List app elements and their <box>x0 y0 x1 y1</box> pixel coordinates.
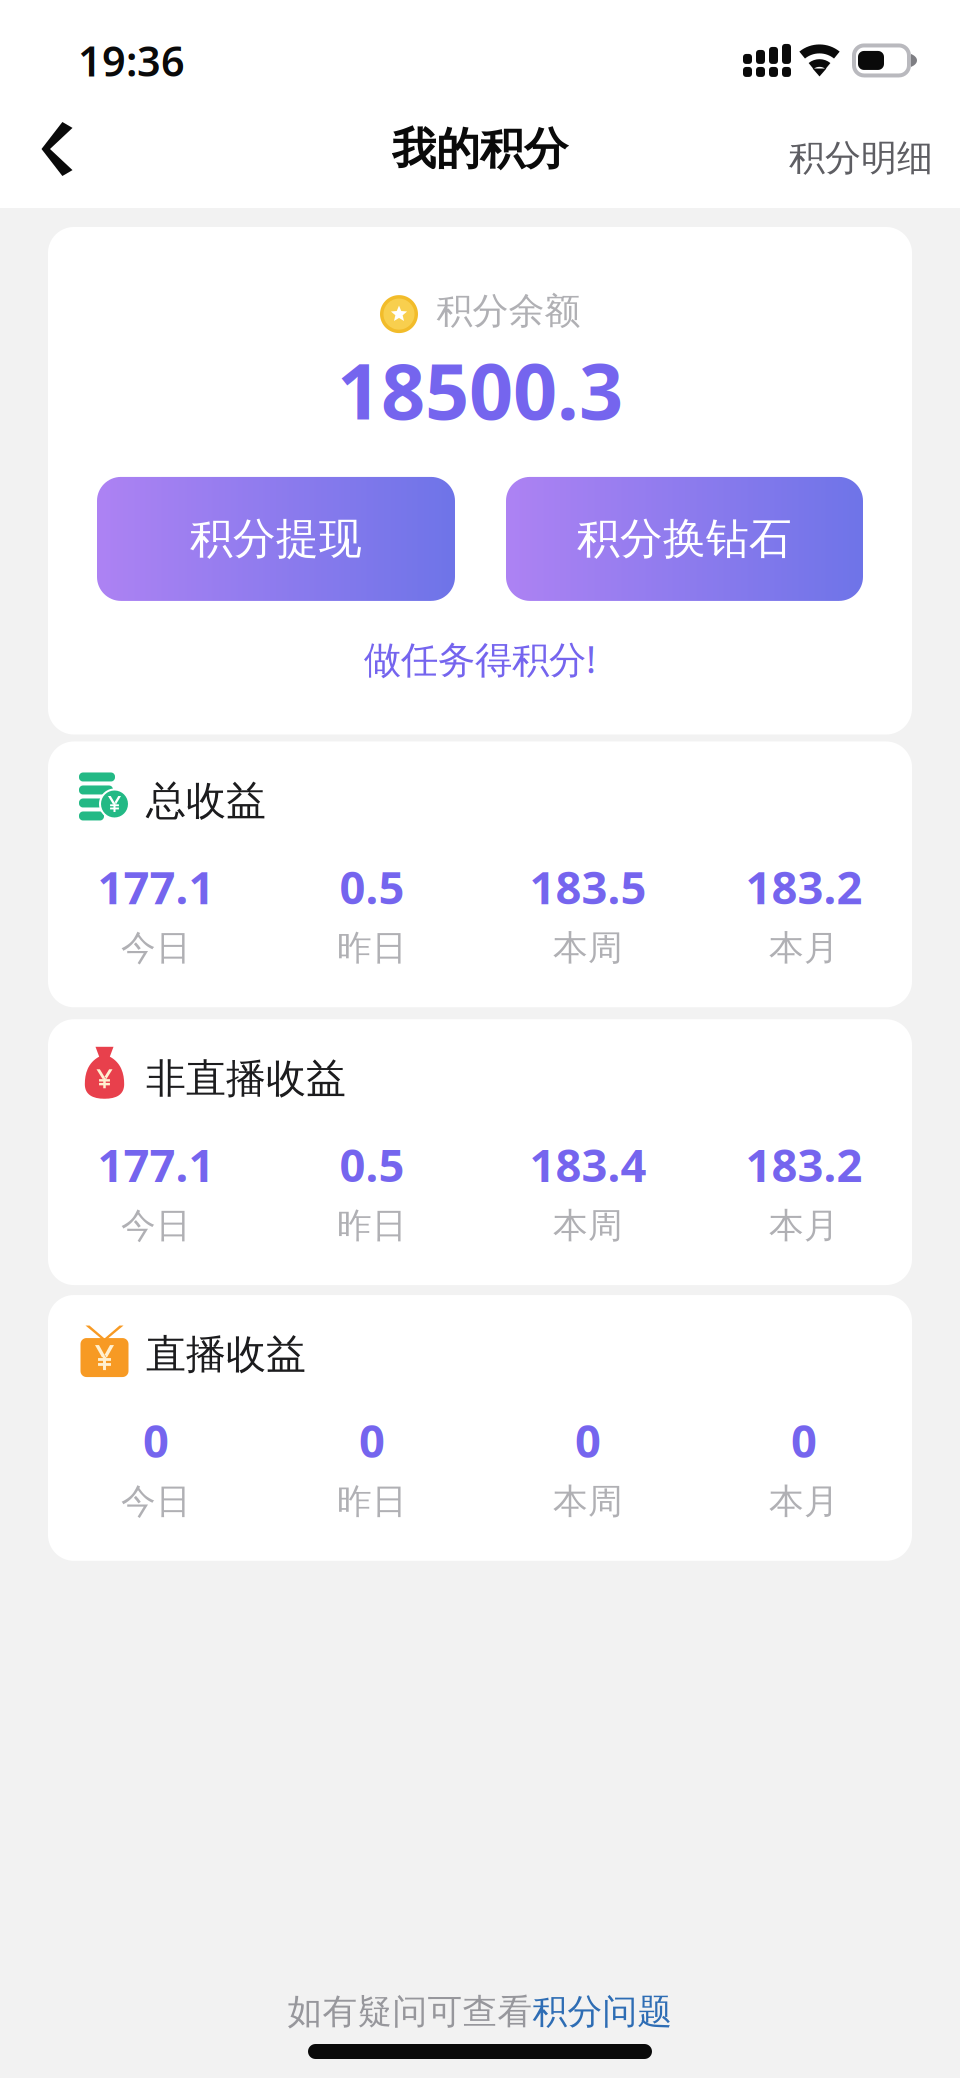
staticText: 总收益 <box>146 776 266 825</box>
staticText: 183.4 <box>529 1134 646 1194</box>
staticText: 0 <box>791 1410 817 1470</box>
staticText: 0 <box>575 1410 601 1470</box>
staticText: 本月 <box>769 1480 839 1523</box>
staticText: 积分余额 <box>436 289 580 333</box>
staticText: 今日 <box>121 1204 191 1247</box>
staticText: 我的积分 <box>392 122 568 176</box>
staticText: 19:36 <box>78 33 185 88</box>
staticText: 昨日 <box>337 927 407 969</box>
button[interactable]: 积分换钻石 <box>506 477 863 601</box>
staticText: 今日 <box>121 927 191 969</box>
staticText: 本周 <box>553 1480 623 1523</box>
staticText: 非直播收益 <box>146 1054 346 1103</box>
button[interactable]: 积分提现 <box>97 477 455 601</box>
button[interactable]: 如有疑问可查看 <box>287 1990 672 2033</box>
button[interactable]: 返回 <box>12 99 102 199</box>
staticText: 本月 <box>769 1204 839 1247</box>
staticText: 昨日 <box>337 1480 407 1523</box>
button[interactable]: 积分明细 <box>789 99 933 199</box>
staticText: 本月 <box>769 927 839 969</box>
staticText: 积分换钻石 <box>577 513 792 565</box>
button[interactable]: 做任务得积分! <box>364 634 596 683</box>
staticText: 18500.3 <box>337 338 623 441</box>
staticText: 直播收益 <box>146 1330 306 1379</box>
staticText: 0 <box>359 1410 385 1470</box>
staticText: 183.5 <box>529 856 646 917</box>
staticText: 本周 <box>553 1204 623 1247</box>
staticText: 积分提现 <box>190 513 362 565</box>
staticText: 183.2 <box>745 856 862 917</box>
staticText: 0 <box>143 1410 169 1470</box>
staticText: 本周 <box>553 927 623 969</box>
staticText: 177.1 <box>97 1134 214 1194</box>
staticText: 今日 <box>121 1480 191 1523</box>
staticText: 如有疑问可查看 <box>287 1990 532 2033</box>
staticText: 0.5 <box>339 856 404 917</box>
staticText: 183.2 <box>745 1134 862 1194</box>
staticText: 177.1 <box>97 856 214 917</box>
staticText: 做任务得积分! <box>364 634 596 683</box>
staticText: 昨日 <box>337 1204 407 1247</box>
staticText: 积分明细 <box>789 136 933 180</box>
staticText: 积分问题 <box>532 1990 672 2033</box>
staticText: 0.5 <box>339 1134 404 1194</box>
